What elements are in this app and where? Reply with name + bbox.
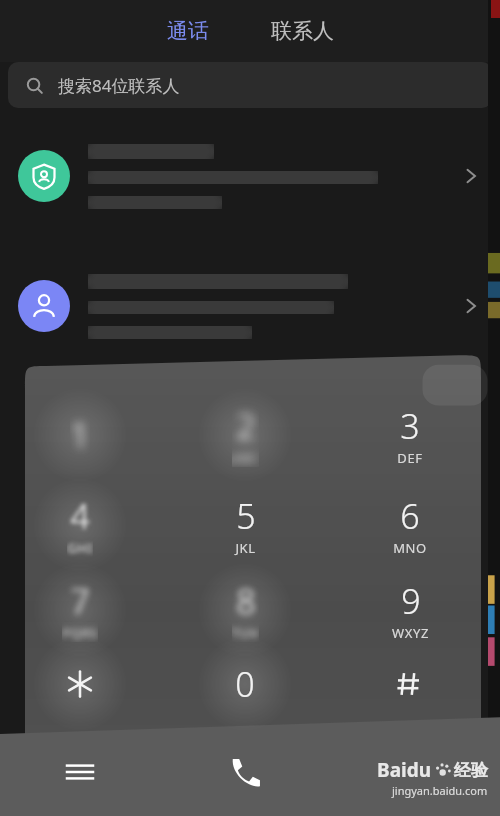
other: More <box>460 295 482 317</box>
staticText: 9 <box>401 578 421 624</box>
button[interactable]: 3 <box>358 401 462 469</box>
button[interactable]: 2 <box>193 401 297 469</box>
staticText: GHI <box>67 539 93 557</box>
button[interactable]: More <box>0 124 500 228</box>
button[interactable]: 4 <box>28 491 132 559</box>
other: More <box>460 165 482 187</box>
staticText: 6 <box>400 493 420 539</box>
staticText: 通话 <box>167 18 209 44</box>
staticText: jingyan.baidu.com <box>392 783 488 798</box>
button[interactable]: Menu <box>52 748 108 796</box>
button[interactable] <box>358 650 462 718</box>
button[interactable]: 搜索84位联系人 <box>8 62 492 108</box>
staticText: ABC <box>232 449 259 467</box>
button[interactable]: 0 <box>193 650 297 718</box>
staticText: 5 <box>236 493 256 539</box>
button[interactable]: 5 <box>193 491 297 559</box>
button[interactable]: 8 <box>193 576 297 644</box>
staticText: 搜索84位联系人 <box>58 74 180 97</box>
staticText: PQRS <box>62 624 98 642</box>
staticText: 2 <box>236 403 256 449</box>
button[interactable] <box>28 650 132 718</box>
staticText: 联系人 <box>271 18 334 44</box>
button[interactable]: 7 <box>28 576 132 644</box>
button[interactable]: 联系人 <box>257 12 348 50</box>
staticText: WXYZ <box>392 624 429 642</box>
staticText: DEF <box>397 449 423 467</box>
button[interactable]: 6 <box>358 491 462 559</box>
staticText: MNO <box>393 539 427 557</box>
staticText: Baidu <box>377 757 432 783</box>
button[interactable]: Call <box>213 746 277 798</box>
staticText: JKL <box>235 539 256 557</box>
staticText: 0 <box>235 661 255 707</box>
staticText: 7 <box>70 578 90 624</box>
staticText: 1 <box>70 412 90 458</box>
button[interactable]: 9 <box>358 576 462 644</box>
button[interactable]: More <box>0 254 500 358</box>
button[interactable]: 通话 <box>153 12 223 50</box>
staticText: 3 <box>400 403 420 449</box>
button[interactable]: 1 <box>28 401 132 469</box>
staticText: 经验 <box>454 760 488 781</box>
staticText: 8 <box>236 578 256 624</box>
staticText: TUV <box>232 624 259 642</box>
staticText: 4 <box>70 493 90 539</box>
